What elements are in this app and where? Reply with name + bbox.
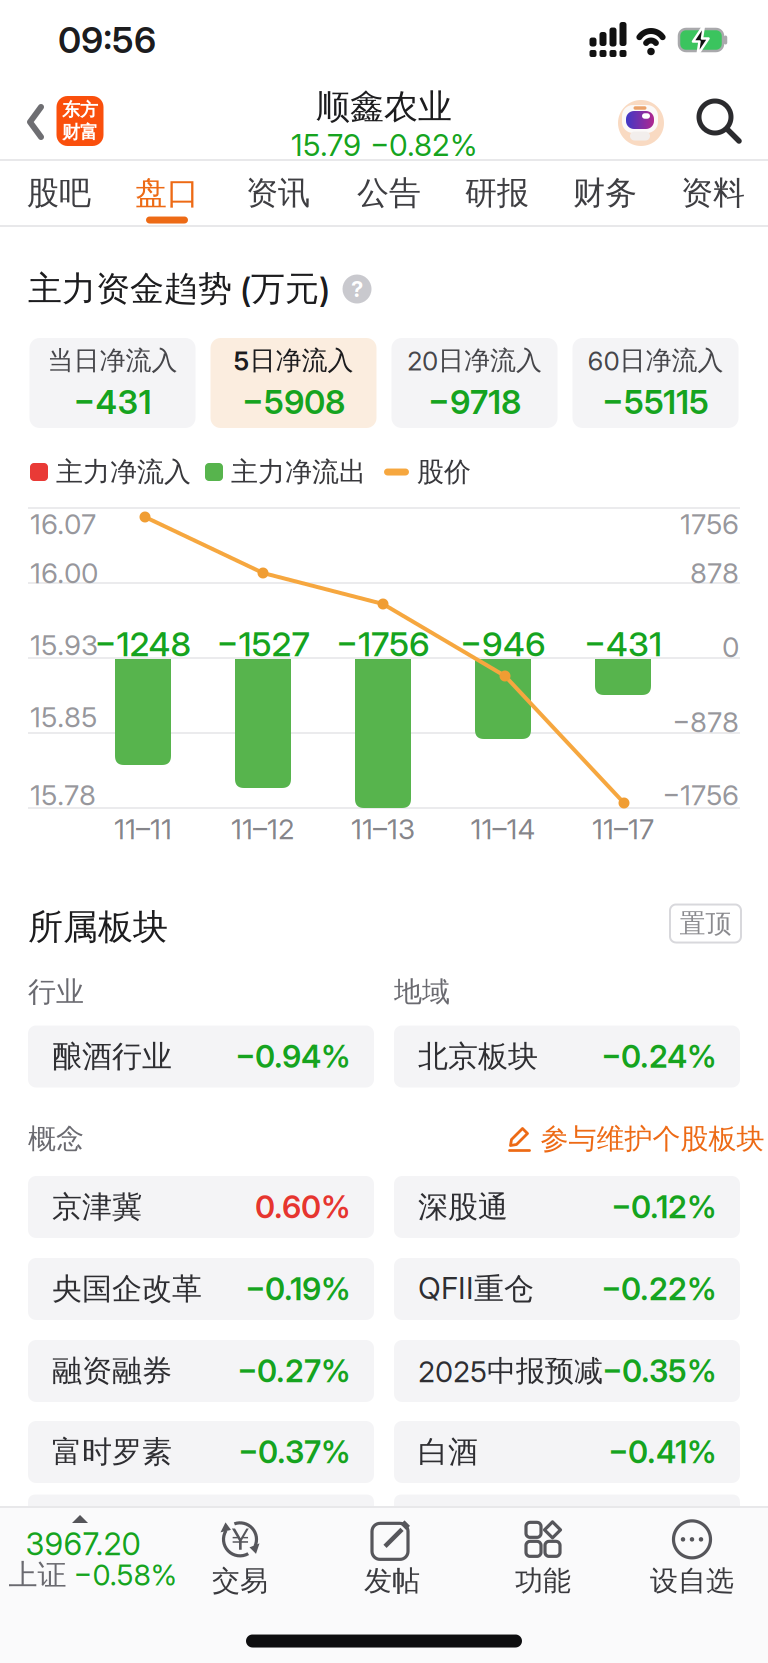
staticText: −1756 bbox=[662, 778, 739, 812]
button[interactable]: 白酒 bbox=[394, 1421, 740, 1483]
button[interactable]: ￥ bbox=[165, 1512, 315, 1604]
staticText: −1527 bbox=[216, 623, 309, 664]
staticText: QFII重仓 bbox=[418, 1270, 534, 1308]
staticText: −1756 bbox=[336, 623, 430, 664]
staticText: 公告 bbox=[357, 173, 421, 213]
staticText: −0.37% bbox=[238, 1433, 351, 1471]
button[interactable]: 股吧 bbox=[9, 162, 109, 224]
button[interactable]: 资讯 bbox=[228, 162, 328, 224]
button[interactable]: 上证指数 bbox=[0, 1506, 170, 1606]
staticText: 央国企改革 bbox=[52, 1270, 202, 1308]
staticText: 参与维护个股板块 bbox=[540, 1121, 764, 1157]
staticText: 上证 bbox=[8, 1557, 66, 1593]
staticText: 11–17 bbox=[592, 812, 654, 846]
button[interactable]: 当日净流入 bbox=[29, 338, 195, 428]
staticText: −0.41% bbox=[608, 1433, 717, 1471]
staticText: 11–13 bbox=[351, 812, 415, 846]
staticText: 概念 bbox=[28, 1121, 84, 1157]
staticText: 资讯 bbox=[246, 173, 310, 213]
staticText: −55115 bbox=[602, 382, 709, 422]
staticText: 所属板块 bbox=[28, 905, 168, 949]
staticText: −431 bbox=[73, 382, 151, 422]
staticText: −0.12% bbox=[611, 1188, 717, 1226]
staticText: −431 bbox=[584, 623, 662, 664]
staticText: 主力净流入 bbox=[56, 455, 191, 489]
button[interactable]: 功能 bbox=[468, 1512, 618, 1604]
staticText: 盘口 bbox=[135, 173, 199, 213]
staticText: 研报 bbox=[465, 173, 529, 213]
staticText: −878 bbox=[672, 705, 739, 739]
staticText: 5日净流入 bbox=[233, 344, 353, 377]
button[interactable]: 深股通 bbox=[394, 1176, 740, 1238]
button[interactable]: 央国企改革 bbox=[28, 1258, 374, 1320]
button[interactable]: 60日净流入 bbox=[572, 338, 738, 428]
staticText: 09:56 bbox=[58, 18, 156, 62]
staticText: 主力资金趋势 (万元) bbox=[28, 268, 330, 310]
staticText: 20日净流入 bbox=[407, 344, 542, 377]
staticText: 15.79 bbox=[291, 127, 361, 163]
staticText: 北京板块 bbox=[418, 1038, 538, 1075]
staticText: 交易 bbox=[212, 1563, 268, 1599]
staticText: 878 bbox=[690, 556, 739, 590]
button[interactable]: 酿酒行业 bbox=[28, 1025, 374, 1087]
button[interactable]: 搜索 bbox=[699, 101, 741, 143]
staticText: 深股通 bbox=[418, 1188, 508, 1226]
staticText: 发帖 bbox=[364, 1563, 420, 1599]
button[interactable]: 融资融券 bbox=[28, 1340, 374, 1402]
staticText: 0 bbox=[722, 630, 739, 664]
staticText: 置顶 bbox=[679, 907, 731, 940]
staticText: −5908 bbox=[242, 382, 345, 422]
staticText: 地域 bbox=[394, 974, 450, 1010]
staticText: 主力净流出 bbox=[231, 455, 366, 489]
button[interactable]: 盘口 bbox=[117, 162, 217, 224]
staticText: −0.19% bbox=[245, 1270, 351, 1308]
staticText: 酿酒行业 bbox=[52, 1038, 172, 1075]
staticText: 设自选 bbox=[650, 1563, 734, 1599]
staticText: ? bbox=[351, 276, 363, 302]
staticText: −0.27% bbox=[237, 1352, 351, 1390]
button[interactable]: 设自选 bbox=[617, 1512, 767, 1604]
staticText: 11–14 bbox=[470, 812, 535, 846]
button[interactable]: QFII重仓 bbox=[394, 1258, 740, 1320]
button[interactable]: 20日净流入 bbox=[391, 338, 557, 428]
staticText: 富时罗素 bbox=[52, 1433, 172, 1471]
button[interactable]: 财务 bbox=[555, 162, 655, 224]
button[interactable]: 说明 bbox=[342, 274, 371, 303]
button[interactable]: Back bbox=[27, 104, 45, 140]
staticText: −0.22% bbox=[601, 1270, 717, 1308]
staticText: 行业 bbox=[28, 974, 84, 1010]
staticText: −946 bbox=[460, 623, 546, 664]
button[interactable]: AI 助手 bbox=[618, 100, 664, 146]
button[interactable]: 北京板块 bbox=[394, 1025, 740, 1087]
staticText: 功能 bbox=[515, 1563, 571, 1599]
button[interactable]: 5日净流入 bbox=[210, 338, 376, 428]
staticText: 15.93 bbox=[30, 628, 98, 662]
button[interactable]: 资料 bbox=[663, 162, 763, 224]
staticText: 融资融券 bbox=[52, 1352, 172, 1390]
button[interactable]: 置顶 bbox=[670, 904, 741, 942]
staticText: 15.78 bbox=[30, 778, 96, 812]
staticText: ￥ bbox=[224, 1520, 255, 1559]
button[interactable]: 发帖 bbox=[317, 1512, 467, 1604]
staticText: 股价 bbox=[417, 455, 471, 489]
button[interactable]: 京津冀 bbox=[28, 1176, 374, 1238]
staticText: 1756 bbox=[680, 507, 739, 541]
button[interactable]: 富时罗素 bbox=[28, 1421, 374, 1483]
staticText: −0.35% bbox=[602, 1352, 717, 1390]
staticText: −0.24% bbox=[601, 1038, 717, 1075]
staticText: 资料 bbox=[681, 173, 745, 213]
button[interactable]: 东方财富 bbox=[56, 96, 103, 146]
staticText: 16.00 bbox=[30, 556, 98, 590]
button[interactable]: 参与维护个股板块 bbox=[507, 1121, 764, 1157]
staticText: 财务 bbox=[573, 173, 637, 213]
staticText: 当日净流入 bbox=[47, 344, 177, 377]
staticText: 15.85 bbox=[30, 700, 97, 734]
staticText: 0.60% bbox=[255, 1188, 351, 1226]
button[interactable]: 公告 bbox=[339, 162, 439, 224]
staticText: 白酒 bbox=[418, 1433, 478, 1471]
button[interactable]: 研报 bbox=[447, 162, 547, 224]
staticText: −1248 bbox=[94, 623, 191, 664]
staticText: 顺鑫农业 bbox=[316, 86, 452, 128]
staticText: 2025中报预减 bbox=[418, 1353, 603, 1389]
button[interactable]: 2025中报预减 bbox=[394, 1340, 740, 1402]
